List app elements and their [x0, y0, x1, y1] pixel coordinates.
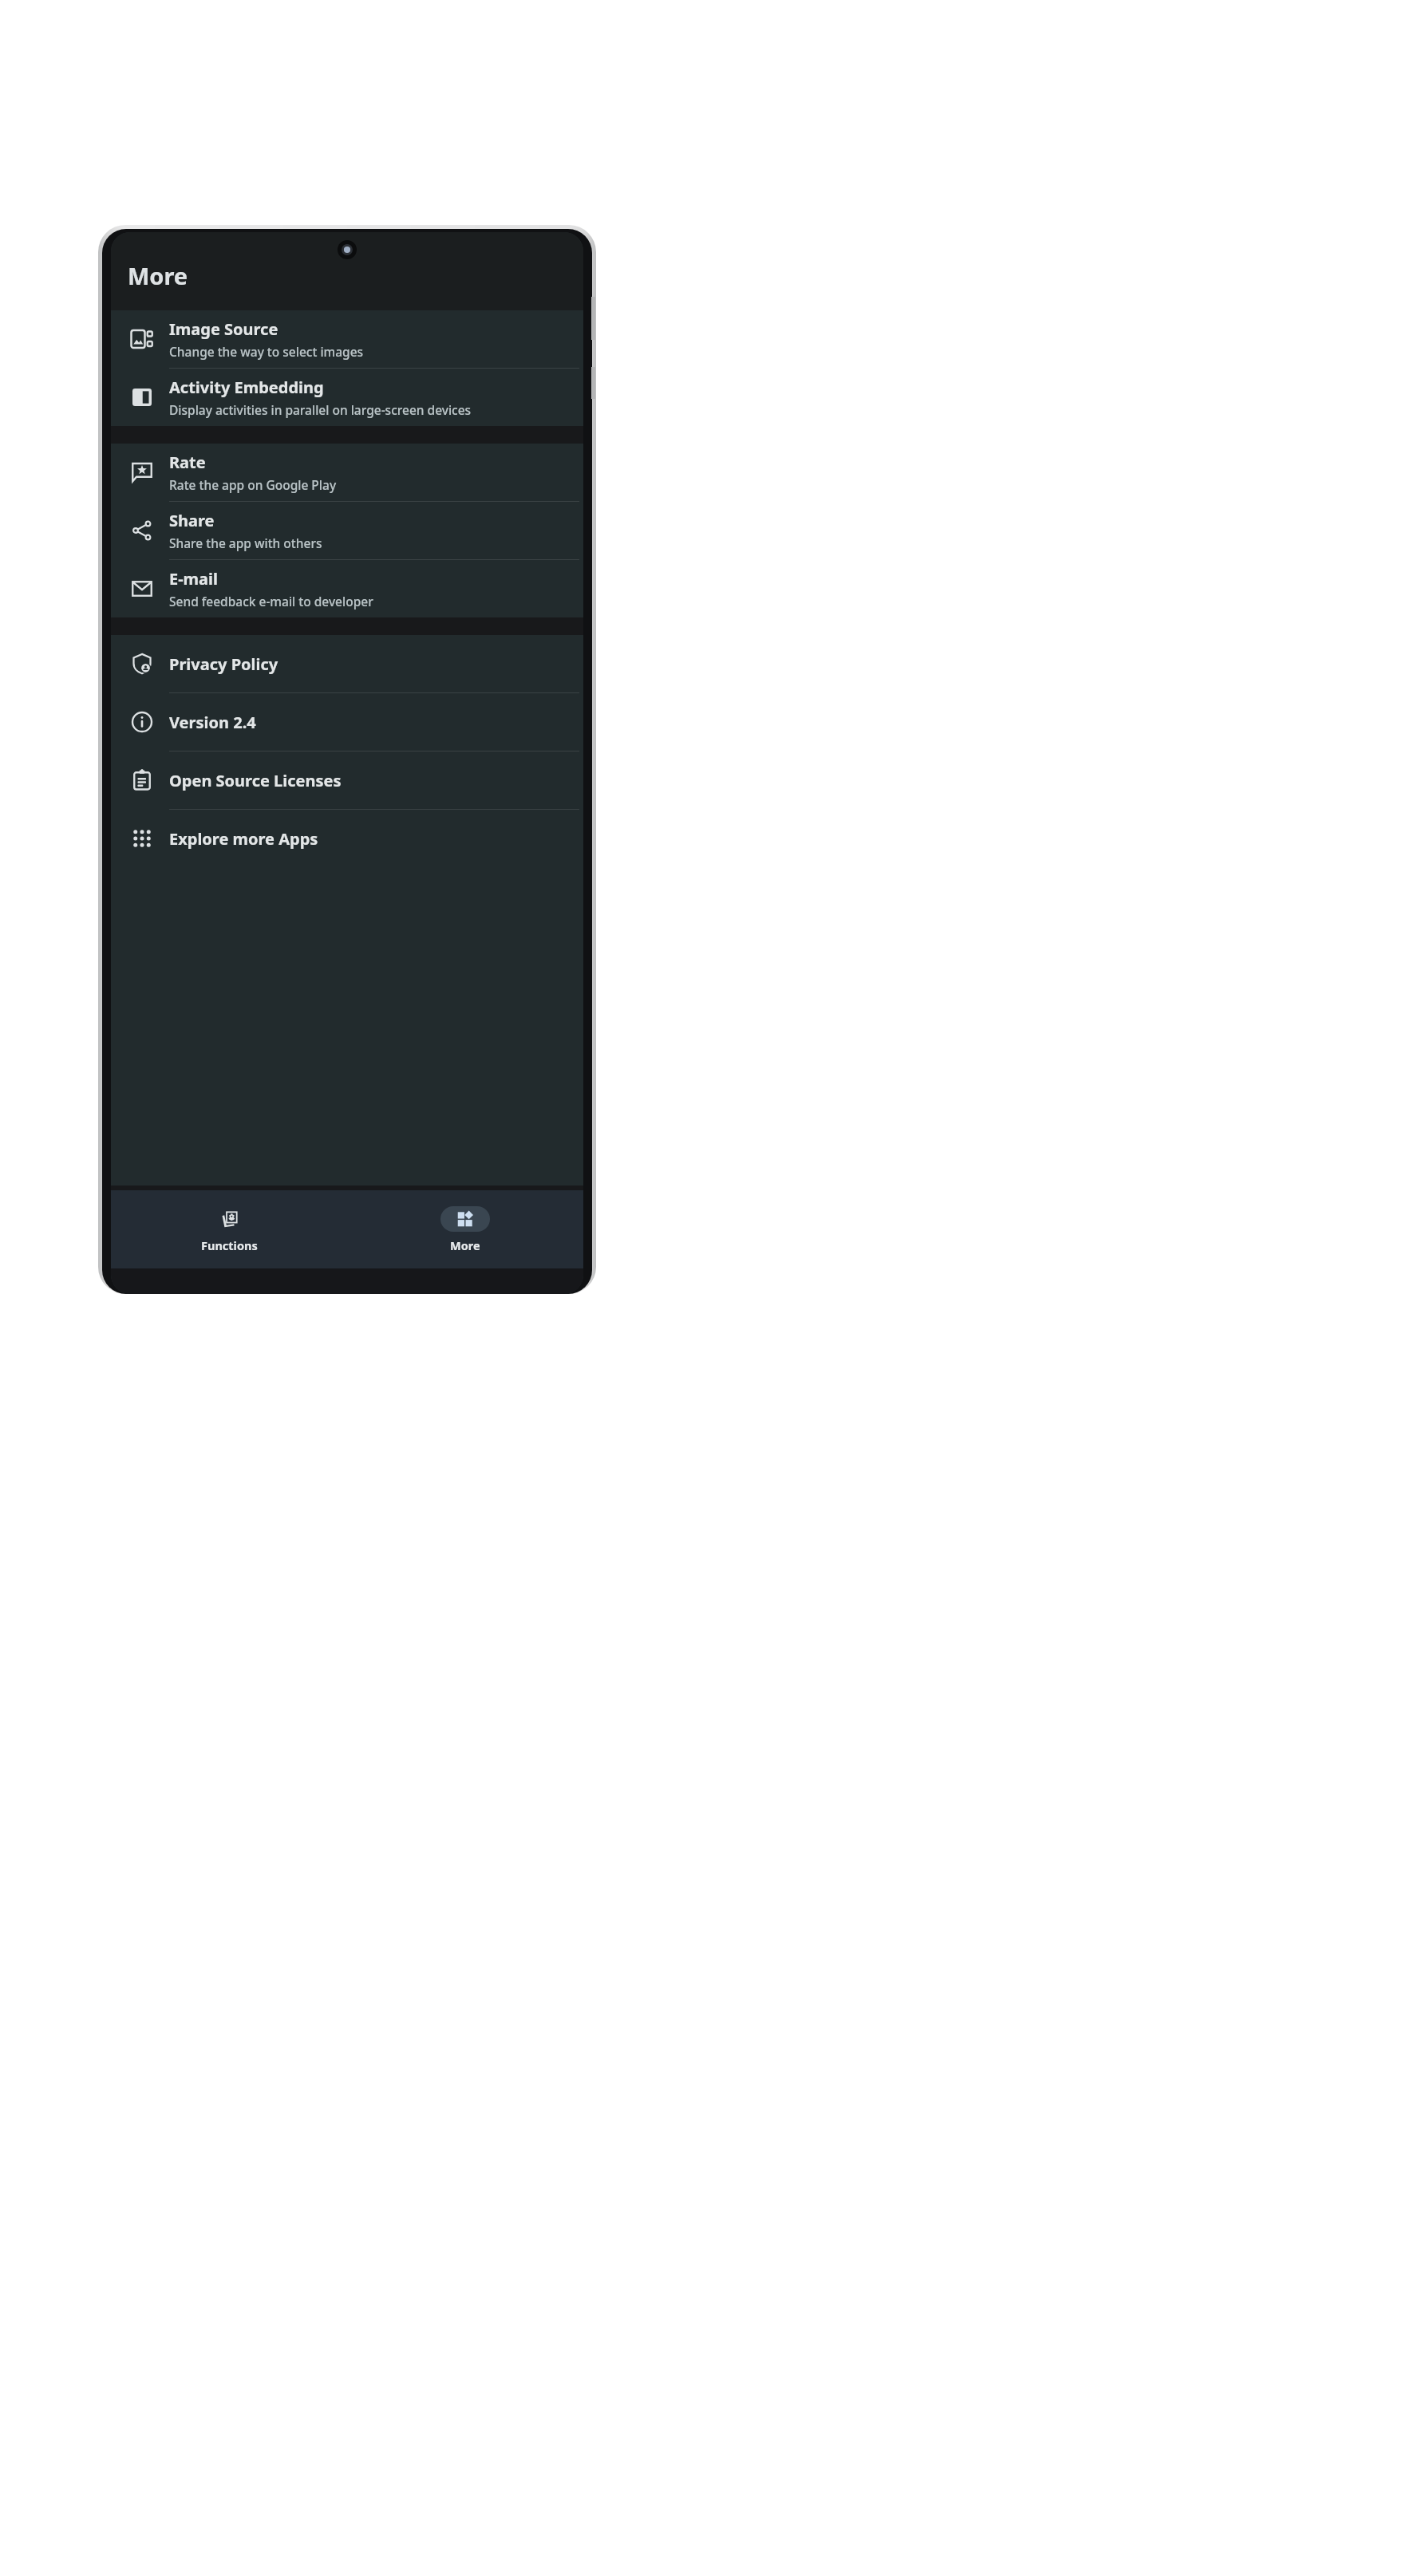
button[interactable]: Share: [111, 502, 583, 560]
button[interactable]: Open source licenses: [111, 751, 583, 810]
staticText: Share: [169, 510, 215, 531]
other: E-mail: [130, 577, 154, 601]
staticText: E-mail: [169, 568, 219, 590]
other: Activity embedding: [130, 385, 154, 409]
staticText: Version 2.4: [169, 712, 256, 733]
staticText: More: [450, 1237, 480, 1253]
other: Version: [130, 710, 154, 734]
staticText: Rate the app on Google Play: [169, 476, 337, 493]
button[interactable]: Activity embedding: [111, 369, 583, 426]
button[interactable]: Privacy policy: [111, 635, 583, 693]
staticText: Open Source Licenses: [169, 770, 342, 791]
staticText: Image Source: [169, 318, 278, 340]
staticText: Explore more Apps: [169, 828, 318, 850]
other: Privacy policy: [130, 652, 154, 676]
other: Open source licenses: [130, 768, 154, 792]
other: Rate: [130, 460, 154, 484]
button[interactable]: Version: [111, 693, 583, 751]
other: More: [456, 1210, 475, 1229]
other: Share: [130, 519, 154, 542]
other: Image source: [130, 327, 154, 351]
other: Functions: [220, 1210, 239, 1229]
button[interactable]: More: [347, 1190, 583, 1268]
button[interactable]: Functions: [111, 1190, 347, 1268]
staticText: Send feedback e-mail to developer: [169, 593, 373, 609]
staticText: More: [128, 260, 188, 291]
staticText: Activity Embedding: [169, 377, 324, 398]
staticText: Functions: [201, 1237, 258, 1253]
staticText: Rate: [169, 452, 206, 473]
other: Explore more apps: [130, 826, 154, 850]
staticText: Share the app with others: [169, 535, 322, 551]
button[interactable]: Image source: [111, 310, 583, 369]
button[interactable]: Explore more apps: [111, 810, 583, 867]
button[interactable]: E-mail: [111, 560, 583, 617]
staticText: Change the way to select images: [169, 343, 364, 360]
staticText: Privacy Policy: [169, 653, 278, 675]
staticText: Display activities in parallel on large-…: [169, 401, 472, 418]
button[interactable]: Rate: [111, 444, 583, 502]
